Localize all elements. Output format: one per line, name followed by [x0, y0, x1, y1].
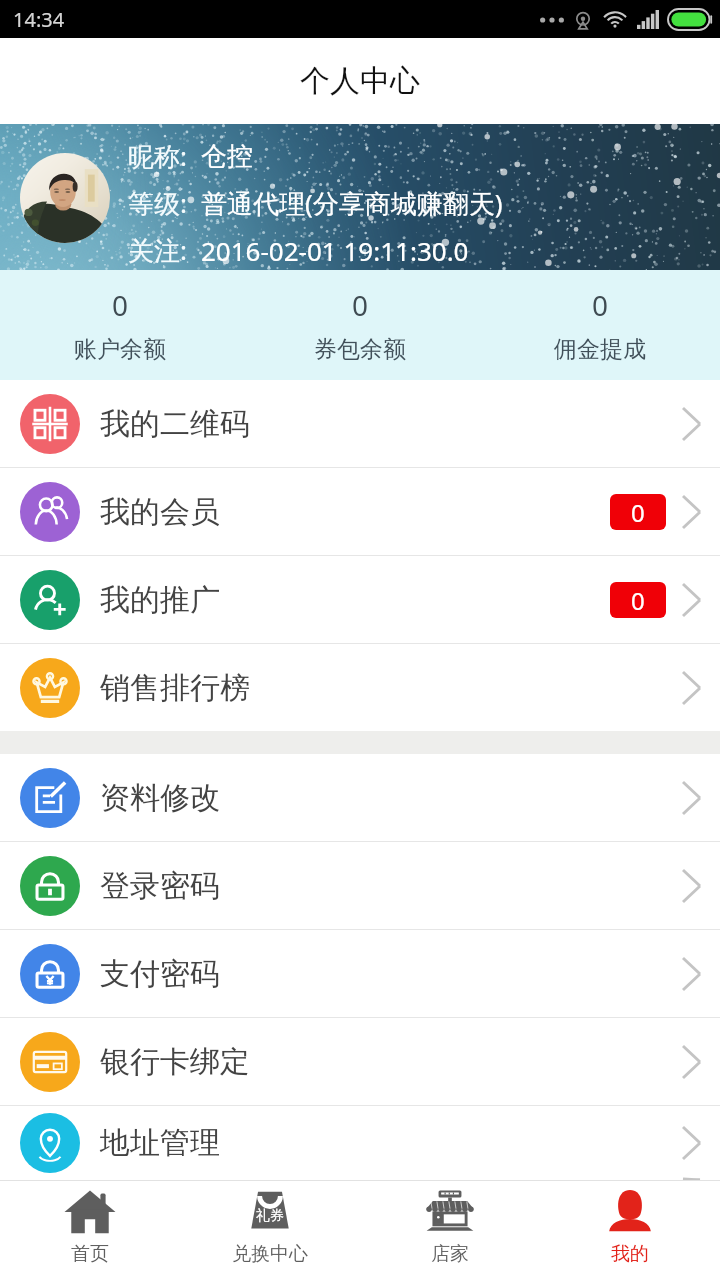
other: Ranking — [20, 658, 80, 718]
staticText: 普通代理(分享商城赚翻天) — [201, 185, 503, 221]
other: Promotion — [20, 570, 80, 630]
staticText: 关注: — [128, 232, 187, 268]
button[interactable]: Pay password — [0, 930, 720, 1017]
staticText: 我的推广 — [100, 581, 220, 619]
staticText: 首页 — [71, 1242, 109, 1266]
other: Pay password — [20, 944, 80, 1004]
staticText: 地址管理 — [100, 1124, 220, 1162]
other: Bank card — [20, 1032, 80, 1092]
staticText: 我的会员 — [100, 493, 220, 531]
staticText: 0 — [112, 286, 129, 324]
other: Exchange center — [244, 1189, 296, 1235]
staticText: 仓控 — [201, 140, 253, 173]
other: Edit profile — [20, 768, 80, 828]
staticText: 支付密码 — [100, 955, 220, 993]
staticText: 等级: — [128, 185, 187, 221]
button[interactable]: Login password — [0, 842, 720, 929]
button[interactable]: Bank card — [0, 1018, 720, 1105]
staticText: 0 — [592, 286, 609, 324]
button[interactable]: Members — [0, 468, 720, 555]
button[interactable]: Address — [0, 1106, 720, 1180]
button[interactable]: 0 — [240, 270, 480, 380]
staticText: 2016-02-01 19:11:30.0 — [201, 233, 469, 268]
staticText: 个人中心 — [300, 62, 420, 100]
other: Address — [20, 1113, 80, 1173]
button[interactable]: 0 — [480, 270, 720, 380]
other: Mine — [604, 1189, 656, 1235]
staticText: 资料修改 — [100, 779, 220, 817]
staticText: 我的 — [611, 1242, 649, 1266]
staticText: 销售排行榜 — [100, 669, 250, 707]
staticText: 券包余额 — [314, 335, 406, 364]
button[interactable]: Mine — [540, 1181, 720, 1274]
staticText: 昵称: — [128, 138, 187, 174]
other: Login password — [20, 856, 80, 916]
button[interactable]: QR code — [0, 380, 720, 467]
staticText: 0 — [631, 496, 645, 529]
button[interactable]: 0 — [0, 270, 240, 380]
staticText: 0 — [352, 286, 369, 324]
staticText: 兑换中心 — [232, 1242, 308, 1266]
staticText: 佣金提成 — [554, 335, 646, 364]
staticText: 银行卡绑定 — [100, 1043, 250, 1081]
button[interactable]: Stores — [360, 1181, 540, 1274]
staticText: 我的二维码 — [100, 405, 250, 443]
staticText: 礼券 — [256, 1207, 284, 1225]
button[interactable]: Promotion — [0, 556, 720, 643]
button[interactable]: Exchange center — [180, 1181, 360, 1274]
button[interactable]: Edit profile — [0, 754, 720, 841]
staticText: 登录密码 — [100, 867, 220, 905]
staticText: 店家 — [431, 1242, 469, 1266]
other: Stores — [424, 1189, 476, 1235]
other: Home — [64, 1189, 116, 1235]
staticText: 14:34 — [13, 6, 65, 33]
other: QR code — [20, 394, 80, 454]
staticText: 0 — [631, 584, 645, 617]
other: Members — [20, 482, 80, 542]
staticText: 账户余额 — [74, 335, 166, 364]
button[interactable]: Ranking — [0, 644, 720, 731]
button[interactable]: Home — [0, 1181, 180, 1274]
